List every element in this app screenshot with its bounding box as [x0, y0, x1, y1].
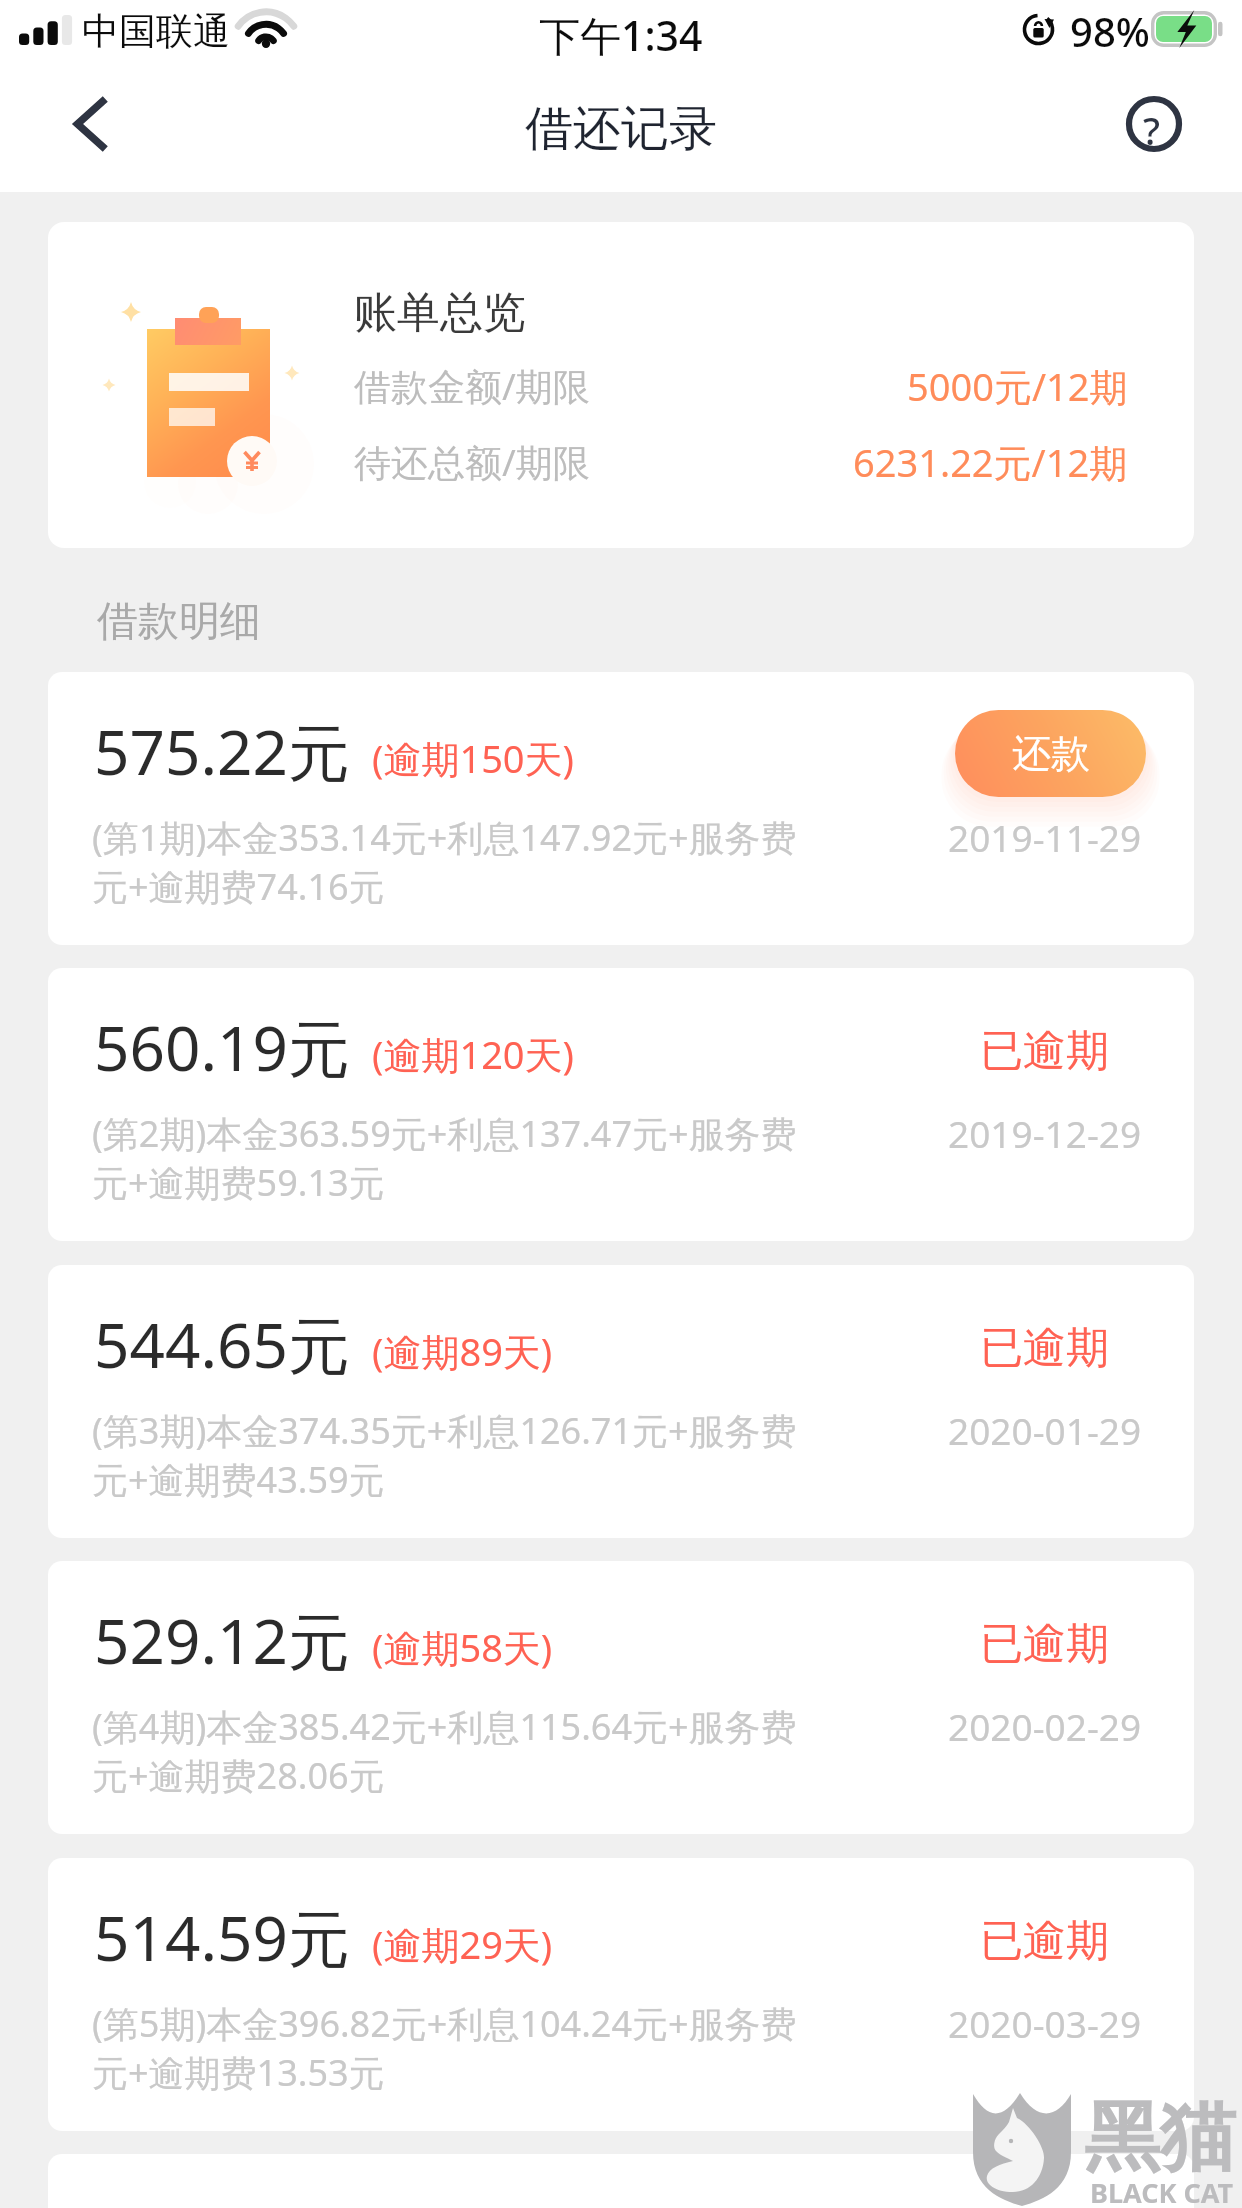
button[interactable]: 560.19元: [48, 968, 1194, 1241]
button[interactable]: Back: [30, 80, 150, 192]
staticText: 6231.22元/12期: [853, 436, 1128, 488]
staticText: (第5期)本金396.82元+利息104.24元+服务费: [92, 1999, 797, 2048]
staticText: 已逾期: [980, 1914, 1109, 1968]
staticText: (第4期)本金385.42元+利息115.64元+服务费: [92, 1702, 797, 1751]
staticText: 98%: [1070, 4, 1150, 58]
staticText: 元+逾期费28.06元: [92, 1751, 385, 1800]
staticText: 2019-11-29: [948, 812, 1142, 862]
staticText: 待还总额/期限: [354, 436, 590, 487]
staticText: 中国联通: [82, 8, 230, 55]
staticText: (逾期120天): [372, 1028, 575, 1080]
staticText: 2020-02-29: [948, 1701, 1142, 1751]
button[interactable]: 544.65元: [48, 1265, 1194, 1538]
staticText: 2020-01-29: [948, 1405, 1142, 1455]
staticText: (逾期89天): [372, 1325, 553, 1377]
staticText: (逾期58天): [372, 1621, 553, 1673]
staticText: 元+逾期费59.13元: [92, 1158, 385, 1207]
staticText: 还款: [1012, 729, 1090, 778]
staticText: 5000元/12期: [907, 360, 1128, 412]
staticText: 已逾期: [980, 1024, 1109, 1078]
staticText: 529.12元: [94, 1598, 350, 1683]
staticText: ?: [1143, 104, 1160, 156]
button[interactable]: 账单总览: [48, 222, 1194, 548]
staticText: (逾期29天): [372, 1918, 553, 1970]
staticText: 元+逾期费43.59元: [92, 1455, 385, 1504]
staticText: 514.59元: [94, 1895, 350, 1980]
staticText: 借还记录: [525, 99, 717, 159]
staticText: BLACK CAT: [1090, 2174, 1234, 2208]
staticText: 黑猫: [1084, 2090, 1236, 2186]
staticText: (逾期150天): [372, 732, 575, 784]
button[interactable]: Help: [1122, 80, 1242, 192]
button[interactable]: 514.59元: [48, 1858, 1194, 2131]
staticText: 账单总览: [354, 286, 526, 340]
staticText: 575.22元: [94, 709, 350, 794]
staticText: 560.19元: [94, 1005, 350, 1090]
button[interactable]: 529.12元: [48, 1561, 1194, 1834]
staticText: 借款明细: [97, 596, 261, 648]
button[interactable]: 还款: [955, 710, 1146, 797]
staticText: 已逾期: [980, 1321, 1109, 1375]
staticText: (第2期)本金363.59元+利息137.47元+服务费: [92, 1109, 797, 1158]
staticText: 已逾期: [980, 1617, 1109, 1671]
staticText: 2019-12-29: [948, 1108, 1142, 1158]
staticText: 下午1:34: [539, 7, 703, 63]
staticText: 元+逾期费74.16元: [92, 862, 385, 911]
button[interactable]: 500.06元: [48, 2154, 1194, 2208]
staticText: 544.65元: [94, 1302, 350, 1387]
staticText: (第3期)本金374.35元+利息126.71元+服务费: [92, 1406, 797, 1455]
staticText: (第1期)本金353.14元+利息147.92元+服务费: [92, 813, 797, 862]
button[interactable]: 575.22元: [48, 672, 1194, 945]
staticText: 2020-03-29: [948, 1998, 1142, 2048]
staticText: 元+逾期费13.53元: [92, 2048, 385, 2097]
staticText: 借款金额/期限: [354, 360, 590, 411]
